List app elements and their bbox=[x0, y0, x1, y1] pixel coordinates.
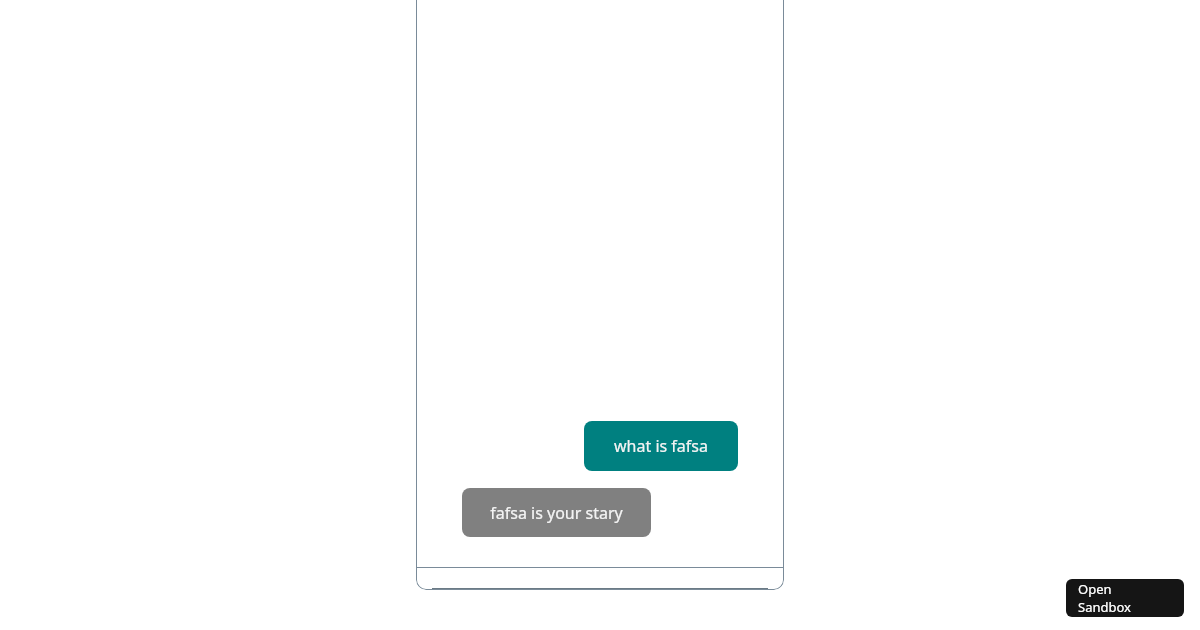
staticText: Open bbox=[1078, 580, 1112, 598]
staticText: fafsa is your stary bbox=[490, 502, 623, 524]
staticText: what is fafsa bbox=[614, 435, 708, 457]
button[interactable]: fafsa is your stary bbox=[462, 488, 651, 537]
button[interactable]: Message input bbox=[432, 588, 768, 590]
button[interactable]: Open bbox=[1066, 579, 1184, 617]
staticText: Sandbox bbox=[1078, 598, 1131, 616]
button[interactable]: what is fafsa bbox=[584, 421, 738, 471]
